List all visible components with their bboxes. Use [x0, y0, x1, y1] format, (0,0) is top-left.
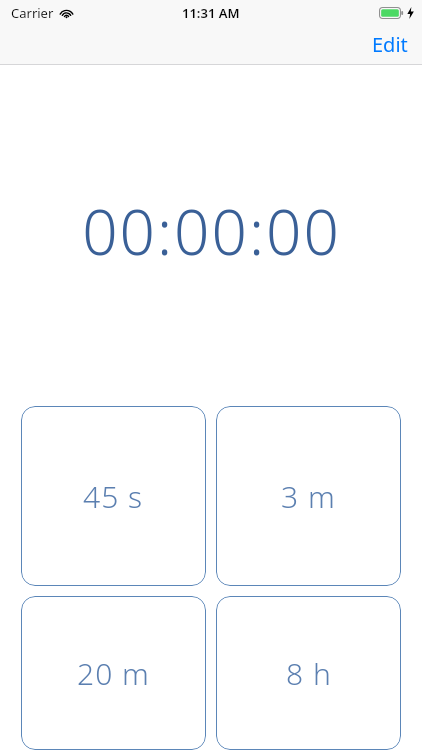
staticText: 3 m	[281, 476, 336, 517]
staticText: 8 h	[286, 653, 332, 694]
staticText: 45 s	[83, 476, 144, 517]
button[interactable]: 20 m	[21, 596, 206, 750]
staticText: 20 m	[77, 653, 150, 694]
button[interactable]: 3 m	[216, 406, 401, 586]
button[interactable]: 8 h	[216, 596, 401, 750]
button[interactable]: 45 s	[21, 406, 206, 586]
staticText: Edit	[372, 31, 408, 58]
button[interactable]: Edit	[358, 26, 422, 63]
staticText: 11:31 AM	[182, 4, 240, 22]
staticText: 00:00:00	[82, 189, 341, 273]
staticText: Carrier	[11, 4, 54, 22]
